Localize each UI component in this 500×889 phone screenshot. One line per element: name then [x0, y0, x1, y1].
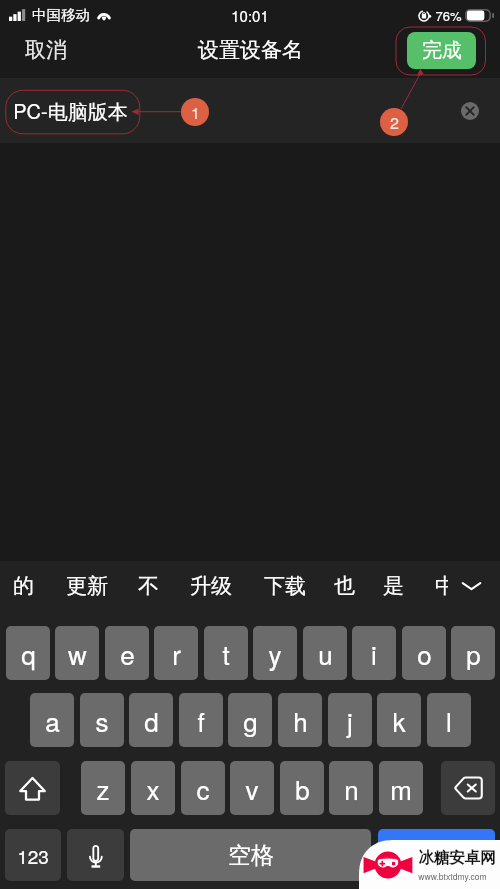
button[interactable]: y: [253, 626, 297, 680]
staticText: 也: [334, 573, 355, 599]
button[interactable]: v: [230, 761, 274, 815]
staticText: 升级: [190, 573, 232, 599]
button[interactable]: h: [278, 693, 322, 747]
button[interactable]: p: [451, 626, 495, 680]
button[interactable]: j: [328, 693, 372, 747]
staticText: 不: [138, 573, 159, 599]
button[interactable]: l: [427, 693, 471, 747]
button[interactable]: s: [80, 693, 124, 747]
button[interactable]: 的: [0, 568, 47, 603]
staticText: e: [120, 635, 135, 672]
staticText: m: [390, 770, 412, 807]
staticText: 76%: [435, 6, 462, 25]
button[interactable]: Backspace: [441, 761, 495, 815]
staticText: www.btxtdmy.com: [418, 870, 487, 882]
staticText: d: [144, 702, 159, 739]
staticText: s: [95, 702, 109, 739]
button[interactable]: 完成: [407, 32, 476, 69]
button[interactable]: 123: [5, 829, 61, 881]
button[interactable]: Clear text: [461, 102, 479, 120]
staticText: z: [96, 770, 110, 807]
staticText: n: [344, 770, 359, 807]
button[interactable]: r: [154, 626, 198, 680]
staticText: b: [295, 770, 310, 807]
button[interactable]: q: [6, 626, 50, 680]
staticText: 冰糖安卓网: [418, 848, 496, 868]
button[interactable]: 不: [124, 568, 172, 603]
button[interactable]: 中: [421, 568, 469, 603]
staticText: h: [293, 702, 308, 739]
button[interactable]: x: [131, 761, 175, 815]
staticText: j: [347, 702, 353, 739]
staticText: i: [371, 635, 377, 672]
staticText: 更新: [66, 573, 108, 599]
button[interactable]: 换行: [378, 829, 495, 881]
staticText: t: [222, 635, 230, 672]
button[interactable]: n: [329, 761, 373, 815]
staticText: f: [197, 702, 205, 739]
button[interactable]: PC-电脑版本: [0, 78, 500, 143]
staticText: w: [68, 635, 87, 672]
staticText: p: [466, 635, 481, 672]
button[interactable]: w: [55, 626, 99, 680]
staticText: o: [417, 635, 432, 672]
staticText: 取消: [25, 37, 67, 63]
staticText: r: [172, 635, 181, 672]
staticText: g: [243, 702, 258, 739]
staticText: PC-电脑版本: [13, 96, 128, 125]
button[interactable]: 取消: [0, 29, 92, 71]
staticText: 2: [390, 111, 399, 134]
staticText: a: [45, 702, 60, 739]
staticText: q: [21, 635, 36, 672]
button[interactable]: 升级: [175, 568, 247, 603]
staticText: u: [318, 635, 333, 672]
button[interactable]: 是: [369, 568, 417, 603]
staticText: 换行: [419, 844, 455, 867]
button[interactable]: Hide keyboard: [448, 565, 494, 606]
staticText: 完成: [422, 38, 462, 63]
button[interactable]: 下载: [249, 568, 321, 603]
staticText: 中: [435, 573, 456, 599]
staticText: y: [268, 635, 282, 672]
button[interactable]: t: [204, 626, 248, 680]
staticText: 空格: [228, 841, 274, 870]
staticText: 的: [13, 573, 34, 599]
button[interactable]: z: [81, 761, 125, 815]
button[interactable]: Voice input: [67, 829, 124, 881]
staticText: c: [196, 770, 210, 807]
button[interactable]: g: [228, 693, 272, 747]
staticText: 是: [383, 573, 404, 599]
button[interactable]: o: [402, 626, 446, 680]
staticText: 1: [191, 101, 200, 124]
staticText: l: [446, 702, 452, 739]
button[interactable]: e: [105, 626, 149, 680]
button[interactable]: 空格: [130, 829, 371, 881]
staticText: 设置设备名: [198, 37, 303, 63]
button[interactable]: a: [30, 693, 74, 747]
button[interactable]: 也: [320, 568, 368, 603]
staticText: v: [245, 770, 259, 807]
button[interactable]: b: [280, 761, 324, 815]
staticText: 中国移动: [32, 6, 90, 24]
button[interactable]: d: [129, 693, 173, 747]
button[interactable]: f: [179, 693, 223, 747]
staticText: k: [392, 702, 406, 739]
button[interactable]: k: [377, 693, 421, 747]
button[interactable]: m: [379, 761, 423, 815]
button[interactable]: u: [303, 626, 347, 680]
button[interactable]: i: [352, 626, 396, 680]
button[interactable]: Shift: [5, 761, 60, 815]
staticText: 123: [17, 842, 49, 869]
staticText: 10:01: [231, 5, 269, 26]
button[interactable]: 更新: [51, 568, 123, 603]
staticText: 下载: [264, 573, 306, 599]
staticText: x: [146, 770, 160, 807]
button[interactable]: c: [181, 761, 225, 815]
